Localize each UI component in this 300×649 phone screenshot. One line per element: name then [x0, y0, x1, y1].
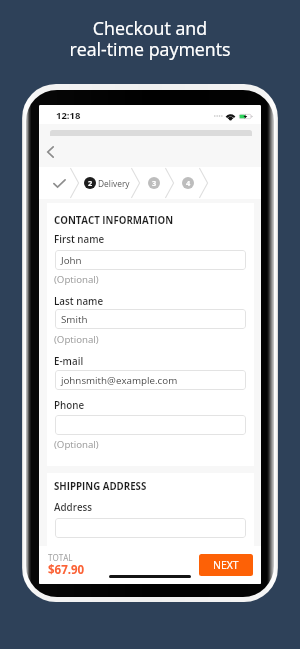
staticText: Address [54, 501, 93, 514]
staticText: 2 [88, 178, 93, 188]
staticText: (Optional) [54, 438, 99, 451]
staticText: SHIPPING ADDRESS [54, 480, 147, 493]
staticText: Delivery [98, 178, 130, 189]
staticText: Last name [54, 295, 104, 308]
staticText: 4 [186, 178, 191, 188]
button[interactable]: 3 [148, 177, 160, 189]
button[interactable]: NEXT [199, 554, 253, 576]
staticText: johnsmith@example.com [61, 374, 178, 387]
button[interactable]: John [55, 250, 246, 270]
button[interactable] [55, 518, 246, 538]
button[interactable] [55, 415, 246, 435]
staticText: E-mail [54, 355, 84, 368]
staticText: 12:18 [56, 109, 81, 122]
staticText: John [61, 254, 82, 267]
staticText: (Optional) [54, 333, 99, 346]
staticText: 3 [152, 178, 157, 188]
staticText: First name [54, 233, 105, 246]
button[interactable]: Back [39, 141, 61, 163]
staticText: TOTAL [48, 552, 73, 563]
staticText: Phone [54, 399, 85, 412]
button[interactable]: 2 [84, 177, 96, 189]
staticText: CONTACT INFORMATION [54, 214, 174, 227]
staticText: NEXT [213, 558, 239, 572]
staticText: Smith [61, 313, 88, 326]
staticText: (Optional) [54, 273, 99, 286]
button[interactable]: 4 [182, 177, 194, 189]
button[interactable]: Smith [55, 309, 246, 329]
staticText: $67.90 [48, 562, 85, 578]
button[interactable]: johnsmith@example.com [55, 370, 246, 390]
staticText: Checkout and real-time payments [0, 16, 300, 62]
